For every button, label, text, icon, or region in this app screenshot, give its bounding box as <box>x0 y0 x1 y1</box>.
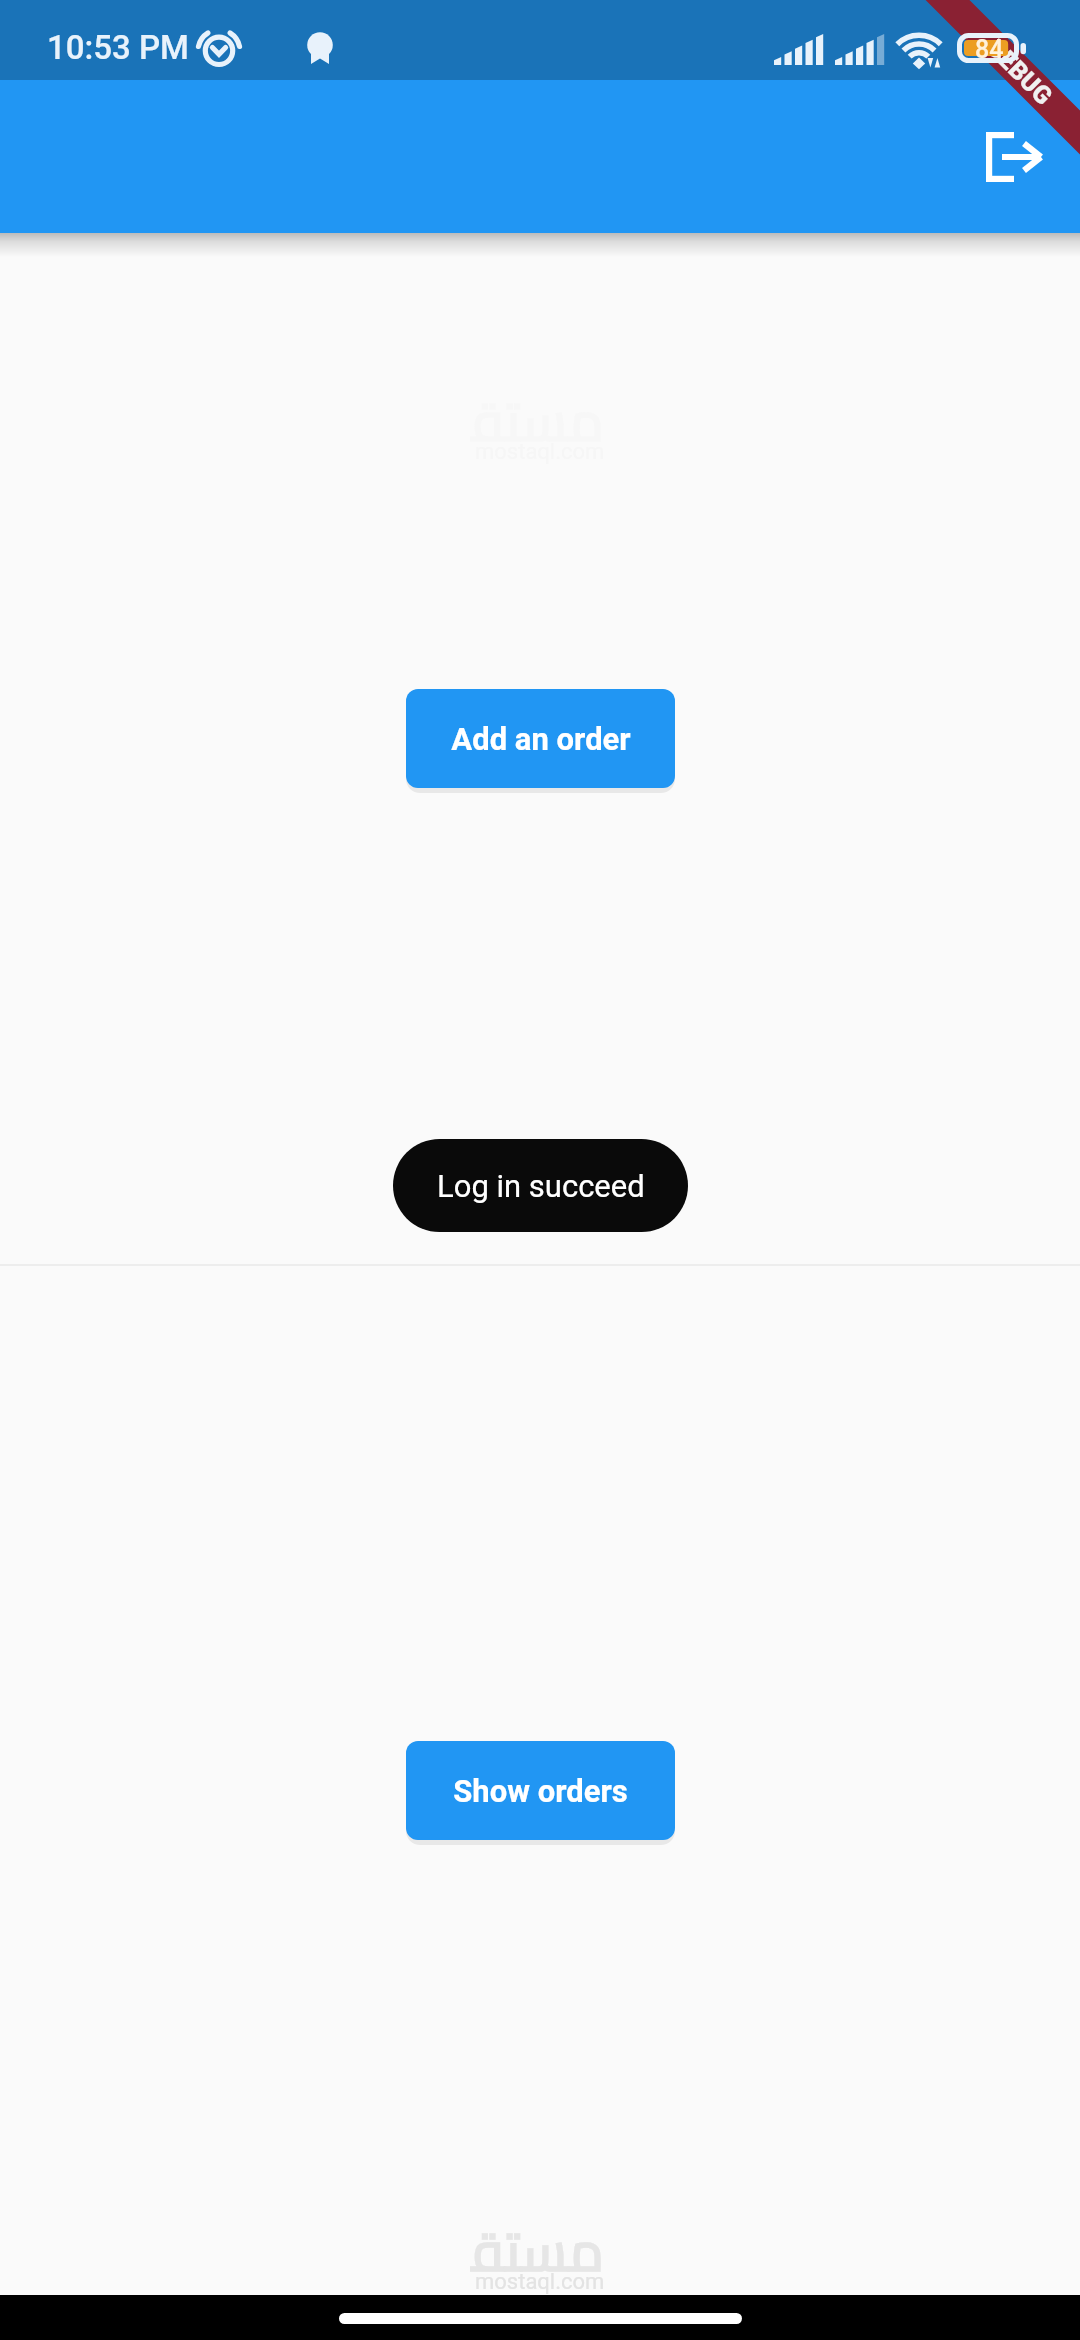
staticText: مستقل <box>470 2199 610 2329</box>
button[interactable]: Log out <box>959 105 1069 209</box>
staticText: 84 <box>975 35 1004 64</box>
staticText: 10:53 PM <box>47 28 189 67</box>
staticText: Show orders <box>453 1773 628 1809</box>
staticText: DEBUG <box>981 34 1058 111</box>
staticText: mostaql.com <box>475 2269 605 2295</box>
staticText: Add an order <box>451 721 631 757</box>
button[interactable]: Show orders <box>406 1741 675 1840</box>
staticText: Log in succeed <box>437 1168 645 1204</box>
button[interactable]: Add an order <box>406 689 675 788</box>
